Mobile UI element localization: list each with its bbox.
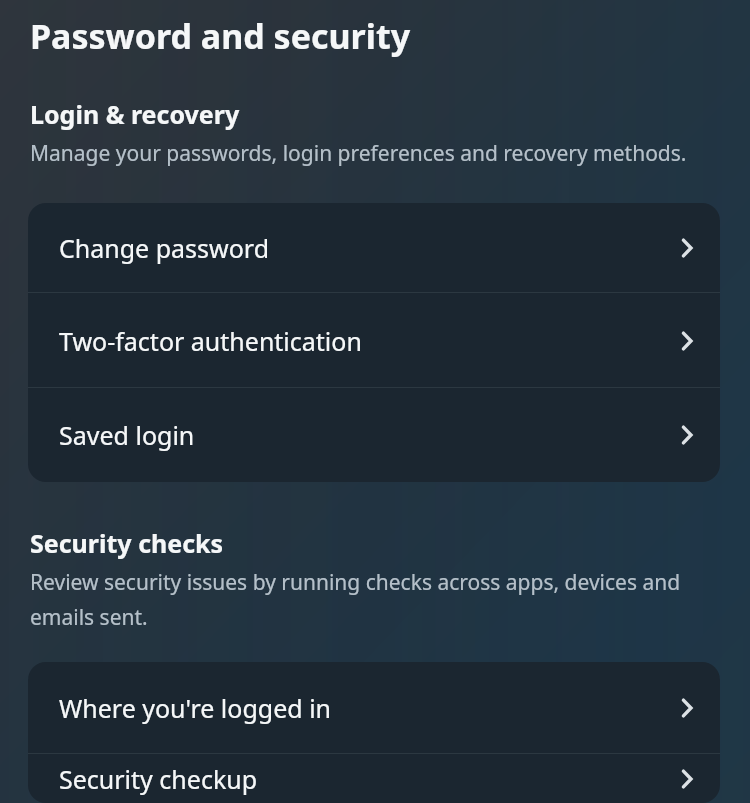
staticText: Security checkup — [59, 762, 677, 796]
staticText: Change password — [59, 231, 677, 265]
staticText: Login & recovery — [30, 97, 240, 131]
staticText: Review security issues by running checks… — [30, 568, 728, 631]
staticText: Manage your passwords, login preferences… — [30, 139, 687, 168]
staticText: Where you're logged in — [59, 691, 677, 725]
button[interactable]: Where you're logged in — [28, 662, 720, 754]
staticText: Security checks — [30, 526, 224, 560]
button[interactable]: Two-factor authentication — [28, 293, 720, 388]
other: Open Where you're logged in — [677, 694, 697, 722]
other: Open Two-factor authentication — [677, 327, 697, 355]
staticText: Two-factor authentication — [59, 324, 677, 358]
other: Open Change password — [677, 234, 697, 262]
staticText: Password and security — [30, 13, 411, 59]
button[interactable]: Change password — [28, 203, 720, 293]
button[interactable]: Saved login — [28, 388, 720, 482]
other: Open Security checkup — [677, 765, 697, 793]
other: Open Saved login — [677, 421, 697, 449]
staticText: Saved login — [59, 418, 677, 452]
button[interactable]: Security checkup — [28, 754, 720, 803]
